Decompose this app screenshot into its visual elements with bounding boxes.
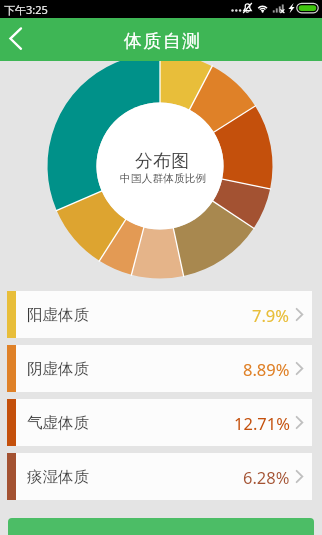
staticText: 痰湿体质 [27, 467, 89, 487]
staticText: 分布图 [135, 150, 189, 173]
button[interactable]: 阴虚体质 [7, 345, 312, 392]
staticText: 阳虚体质 [27, 305, 89, 325]
staticText: 8.89% [243, 358, 290, 380]
button[interactable]: 气虚体质 [7, 399, 312, 446]
button[interactable]: 重新测试 [8, 518, 314, 535]
staticText: 6.28% [243, 466, 290, 488]
button[interactable]: 阳虚体质 [7, 291, 312, 338]
staticText: 12.71% [234, 412, 290, 434]
button[interactable]: Back [0, 18, 34, 61]
button[interactable]: 痰湿体质 [7, 453, 312, 500]
staticText: 阴虚体质 [27, 359, 89, 379]
staticText: 下午3:25 [4, 2, 48, 17]
staticText: 中国人群体质比例 [120, 172, 207, 186]
staticText: 体质自测 [123, 30, 201, 53]
staticText: 7.9% [252, 304, 290, 326]
staticText: 气虚体质 [27, 413, 89, 433]
